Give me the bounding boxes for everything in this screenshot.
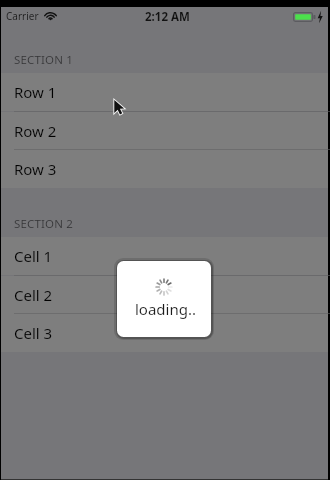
staticText: Row 1 [14,82,57,102]
button[interactable]: Cell 1 [1,237,328,275]
button[interactable]: Row 2 [1,112,328,150]
other: Battery charging [293,12,324,22]
button[interactable]: Row 1 [1,73,328,111]
staticText: Carrier [6,9,39,23]
staticText: SECTION 2 [14,216,73,232]
button[interactable]: Row 3 [1,150,328,188]
button[interactable]: Loading [117,261,211,337]
button[interactable]: Cell 3 [1,314,328,352]
staticText: Row 2 [14,121,57,141]
staticText: loading.. [135,299,196,319]
other: Loading [156,279,172,295]
button[interactable]: Cell 2 [1,276,328,314]
staticText: 2:12 AM [145,9,190,25]
staticText: Cell 3 [14,323,53,343]
staticText: Row 3 [14,159,57,179]
staticText: SECTION 1 [14,52,73,68]
other: Wi-Fi signal [45,11,56,20]
staticText: Cell 2 [14,285,53,305]
staticText: Cell 1 [14,246,53,266]
